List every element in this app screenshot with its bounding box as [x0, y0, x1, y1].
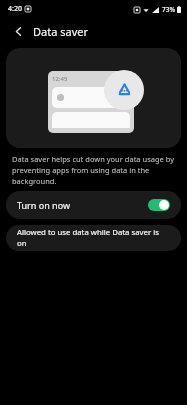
- staticText: Turn on now: [17, 199, 70, 211]
- button[interactable]: Back: [9, 22, 27, 40]
- button[interactable]: Turn on now: [6, 191, 181, 219]
- staticText: Allowed to use data while Data saver is …: [17, 227, 170, 249]
- staticText: 4:20: [8, 4, 22, 14]
- staticText: 12:45: [52, 75, 68, 83]
- staticText: 73%: [162, 5, 175, 14]
- staticText: Data saver: [33, 24, 88, 39]
- button[interactable]: Allowed to use data while Data saver is …: [6, 225, 181, 251]
- staticText: Data saver helps cut down your data usag…: [12, 154, 175, 186]
